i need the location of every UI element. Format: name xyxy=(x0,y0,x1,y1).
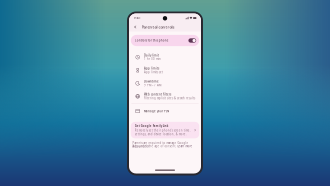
button[interactable]: Manage your PIN xyxy=(129,106,201,116)
button[interactable]: App limits xyxy=(129,64,201,77)
button[interactable]: Get Google Family Link xyxy=(131,122,199,138)
staticText: Downtime xyxy=(144,80,159,83)
button[interactable]: Daily limit xyxy=(129,51,201,64)
staticText: settings, and device location, & more. xyxy=(135,132,187,136)
staticText: 1 hr 30 min xyxy=(144,57,161,61)
staticText: Parental controls xyxy=(142,24,175,30)
staticText: 9:41 xyxy=(134,16,141,20)
staticText: App limits xyxy=(144,67,159,70)
button[interactable]: Downtime xyxy=(129,77,201,90)
staticText: Remotely set their phone's screen time, xyxy=(135,129,191,132)
button[interactable]: Controls for this phone xyxy=(131,35,199,46)
staticText: App limits set xyxy=(144,70,163,74)
staticText: Filtering explicit sites & search result… xyxy=(144,96,195,100)
staticText: Learn more xyxy=(177,144,192,148)
button[interactable]: Back xyxy=(129,21,142,32)
staticText: Get Google Family Link xyxy=(135,124,169,128)
staticText: kids under the age of consent. xyxy=(132,144,177,148)
staticText: Manage your PIN xyxy=(144,109,169,113)
button[interactable]: Learn more xyxy=(177,144,192,148)
staticText: Controls for this phone xyxy=(135,39,169,42)
staticText: 9 PM – 7 AM xyxy=(144,83,161,87)
staticText: Daily limit xyxy=(144,54,159,57)
staticText: Parents are required to manage Google Ac… xyxy=(132,141,188,148)
staticText: Web content filters xyxy=(144,93,171,96)
button[interactable]: Web content filters xyxy=(129,90,201,103)
